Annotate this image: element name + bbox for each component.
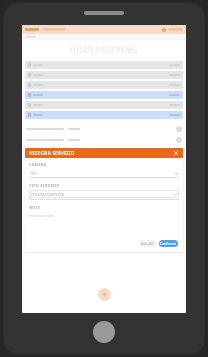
button[interactable]: PULIZIA COMPLETA (29, 190, 179, 198)
button[interactable] (22, 25, 186, 34)
staticText: Inserisci note (29, 213, 55, 218)
button[interactable] (25, 61, 183, 69)
button[interactable] (25, 101, 183, 109)
staticText: TIPO SERVIZIO (29, 183, 60, 188)
staticText: 101 (30, 171, 37, 176)
staticText: Conferma (160, 241, 177, 246)
button[interactable]: Close (172, 149, 180, 157)
button[interactable] (25, 91, 183, 99)
other: Status (176, 126, 182, 132)
button[interactable]: Annulla (139, 240, 156, 247)
button[interactable]: Add (98, 288, 111, 301)
button[interactable]: Home (93, 321, 115, 343)
staticText: CAMERA (29, 162, 47, 167)
button[interactable]: 101 (29, 169, 179, 177)
staticText: HOUSEKEEPING (70, 44, 138, 55)
staticText: PULIZIA COMPLETA (31, 192, 64, 197)
staticText: NOTE (29, 205, 41, 210)
button[interactable] (25, 71, 183, 79)
button[interactable]: Status (26, 134, 182, 145)
button[interactable]: Status (26, 123, 182, 134)
button[interactable]: ASSEGNA SERVIZIO (25, 148, 183, 158)
staticText: Annulla (141, 241, 154, 246)
other: Status (176, 137, 182, 143)
staticText: ASSEGNA SERVIZIO (29, 150, 75, 156)
button[interactable] (25, 81, 183, 89)
button[interactable] (25, 111, 183, 119)
button[interactable]: Conferma (159, 240, 178, 247)
